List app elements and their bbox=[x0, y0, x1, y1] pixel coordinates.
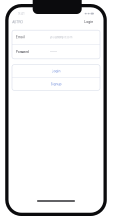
staticText: Login bbox=[84, 19, 93, 24]
button[interactable]: Login bbox=[12, 65, 100, 77]
button[interactable]: ASTRO bbox=[12, 19, 23, 24]
staticText: you@example.com bbox=[50, 35, 72, 39]
button[interactable]: Signup bbox=[12, 78, 100, 90]
staticText: ASTRO bbox=[12, 19, 23, 24]
staticText: Password bbox=[16, 50, 29, 54]
staticText: 9:41 bbox=[18, 11, 25, 16]
staticText: Login bbox=[51, 69, 60, 73]
button[interactable]: Login bbox=[84, 19, 93, 24]
staticText: Signup bbox=[50, 82, 61, 86]
staticText: ••••••• bbox=[50, 50, 57, 54]
staticText: Email bbox=[16, 35, 25, 39]
